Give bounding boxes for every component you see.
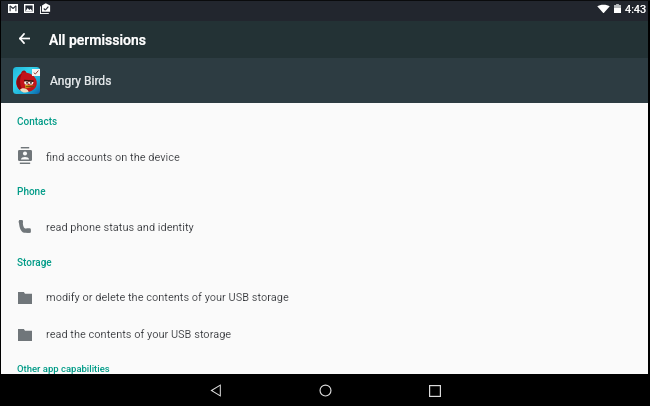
button[interactable]: find accounts on the device — [0, 138, 650, 175]
button[interactable]: Home — [308, 374, 342, 406]
staticText: read phone status and identity — [46, 221, 194, 234]
button[interactable]: modify or delete the contents of your US… — [0, 281, 650, 318]
button[interactable]: read phone status and identity — [0, 211, 650, 248]
staticText: Phone — [17, 186, 46, 198]
button[interactable]: Back — [199, 374, 233, 406]
staticText: Storage — [17, 257, 52, 269]
staticText: modify or delete the contents of your US… — [46, 291, 289, 304]
staticText: Other app capabilities — [17, 363, 110, 374]
staticText: read the contents of your USB storage — [46, 328, 232, 341]
staticText: All permissions — [49, 32, 146, 48]
button[interactable]: read the contents of your USB storage — [0, 318, 650, 355]
staticText: find accounts on the device — [46, 151, 180, 164]
button[interactable]: Recent apps — [418, 375, 452, 406]
button[interactable]: Navigate up — [13, 29, 31, 47]
button[interactable]: Angry Birds — [0, 58, 650, 103]
staticText: 4:43 — [625, 3, 647, 16]
staticText: Contacts — [17, 116, 58, 128]
staticText: Angry Birds — [50, 74, 112, 88]
